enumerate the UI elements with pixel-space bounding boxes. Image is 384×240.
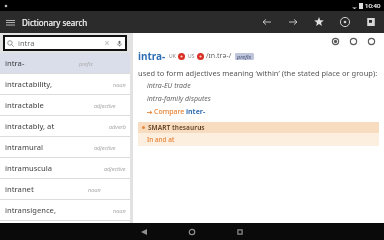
button[interactable]: intractable bbox=[0, 95, 130, 115]
staticText: intractably, at intractable bbox=[5, 121, 57, 131]
staticText: adverb bbox=[109, 123, 126, 130]
button[interactable]: History bbox=[337, 14, 353, 30]
staticText: intramuscular bbox=[5, 163, 54, 173]
button[interactable]: intractability, at intractable bbox=[0, 74, 130, 94]
staticText: intra-EU trade bbox=[147, 81, 191, 91]
button[interactable]: Share bbox=[329, 35, 342, 48]
button[interactable]: Forward bbox=[285, 14, 301, 30]
staticText: intranet bbox=[5, 184, 34, 194]
staticText: intractability, at intractable bbox=[5, 79, 59, 89]
staticText: Compare inter- bbox=[154, 107, 206, 117]
staticText: SMART thesaurus bbox=[148, 123, 205, 132]
button[interactable]: Zoom out bbox=[347, 35, 360, 48]
staticText: /ɪn.trə-/ bbox=[206, 51, 232, 61]
button[interactable]: intramural bbox=[0, 137, 130, 157]
button[interactable]: Favourites bbox=[311, 14, 327, 30]
staticText: 10:40 bbox=[365, 2, 381, 10]
staticText: intramural bbox=[5, 142, 44, 152]
button[interactable]: Zoom in bbox=[365, 35, 378, 48]
button[interactable]: Play pronunciation bbox=[197, 53, 204, 60]
staticText: noun bbox=[88, 186, 101, 193]
button[interactable]: Play pronunciation bbox=[178, 53, 185, 60]
button[interactable]: intransigence, at intransigent bbox=[0, 200, 130, 220]
button[interactable]: Home bbox=[178, 223, 206, 240]
staticText: Dictionary search bbox=[22, 17, 88, 28]
button[interactable]: intra- bbox=[0, 53, 130, 73]
staticText: prefix bbox=[79, 60, 93, 67]
button[interactable]: Open navigation drawer bbox=[6, 17, 88, 28]
staticText: intra-family disputes bbox=[147, 94, 211, 104]
staticText: intra- bbox=[5, 58, 25, 68]
button[interactable]: intractably, at intractable bbox=[0, 116, 130, 136]
staticText: adjective bbox=[104, 165, 126, 172]
staticText: UK bbox=[169, 53, 176, 60]
button[interactable]: intra bbox=[7, 35, 123, 51]
button[interactable]: intramuscular bbox=[0, 158, 130, 178]
button[interactable]: SMART thesaurus bbox=[138, 122, 379, 133]
staticText: noun bbox=[113, 81, 126, 88]
staticText: adjective bbox=[94, 144, 116, 151]
staticText: used to form adjectives meaning ‘within’… bbox=[138, 68, 378, 78]
staticText: intra bbox=[18, 38, 35, 48]
staticText: noun bbox=[113, 207, 126, 214]
button[interactable]: Recent apps bbox=[226, 223, 254, 240]
button[interactable]: Compare inter- bbox=[147, 107, 206, 117]
button[interactable]: Back bbox=[259, 14, 275, 30]
staticText: intransigence, at intransigent bbox=[5, 205, 59, 215]
staticText: In and at bbox=[147, 135, 175, 144]
button[interactable]: intranet bbox=[0, 179, 130, 199]
button[interactable]: In and at bbox=[138, 133, 379, 146]
staticText: prefix bbox=[237, 53, 252, 60]
staticText: intractable bbox=[5, 100, 44, 110]
staticText: intra- bbox=[138, 49, 166, 63]
button[interactable]: Saved bbox=[363, 14, 379, 30]
staticText: US bbox=[188, 53, 195, 60]
button[interactable]: Back bbox=[130, 223, 158, 240]
staticText: adjective bbox=[94, 102, 116, 109]
